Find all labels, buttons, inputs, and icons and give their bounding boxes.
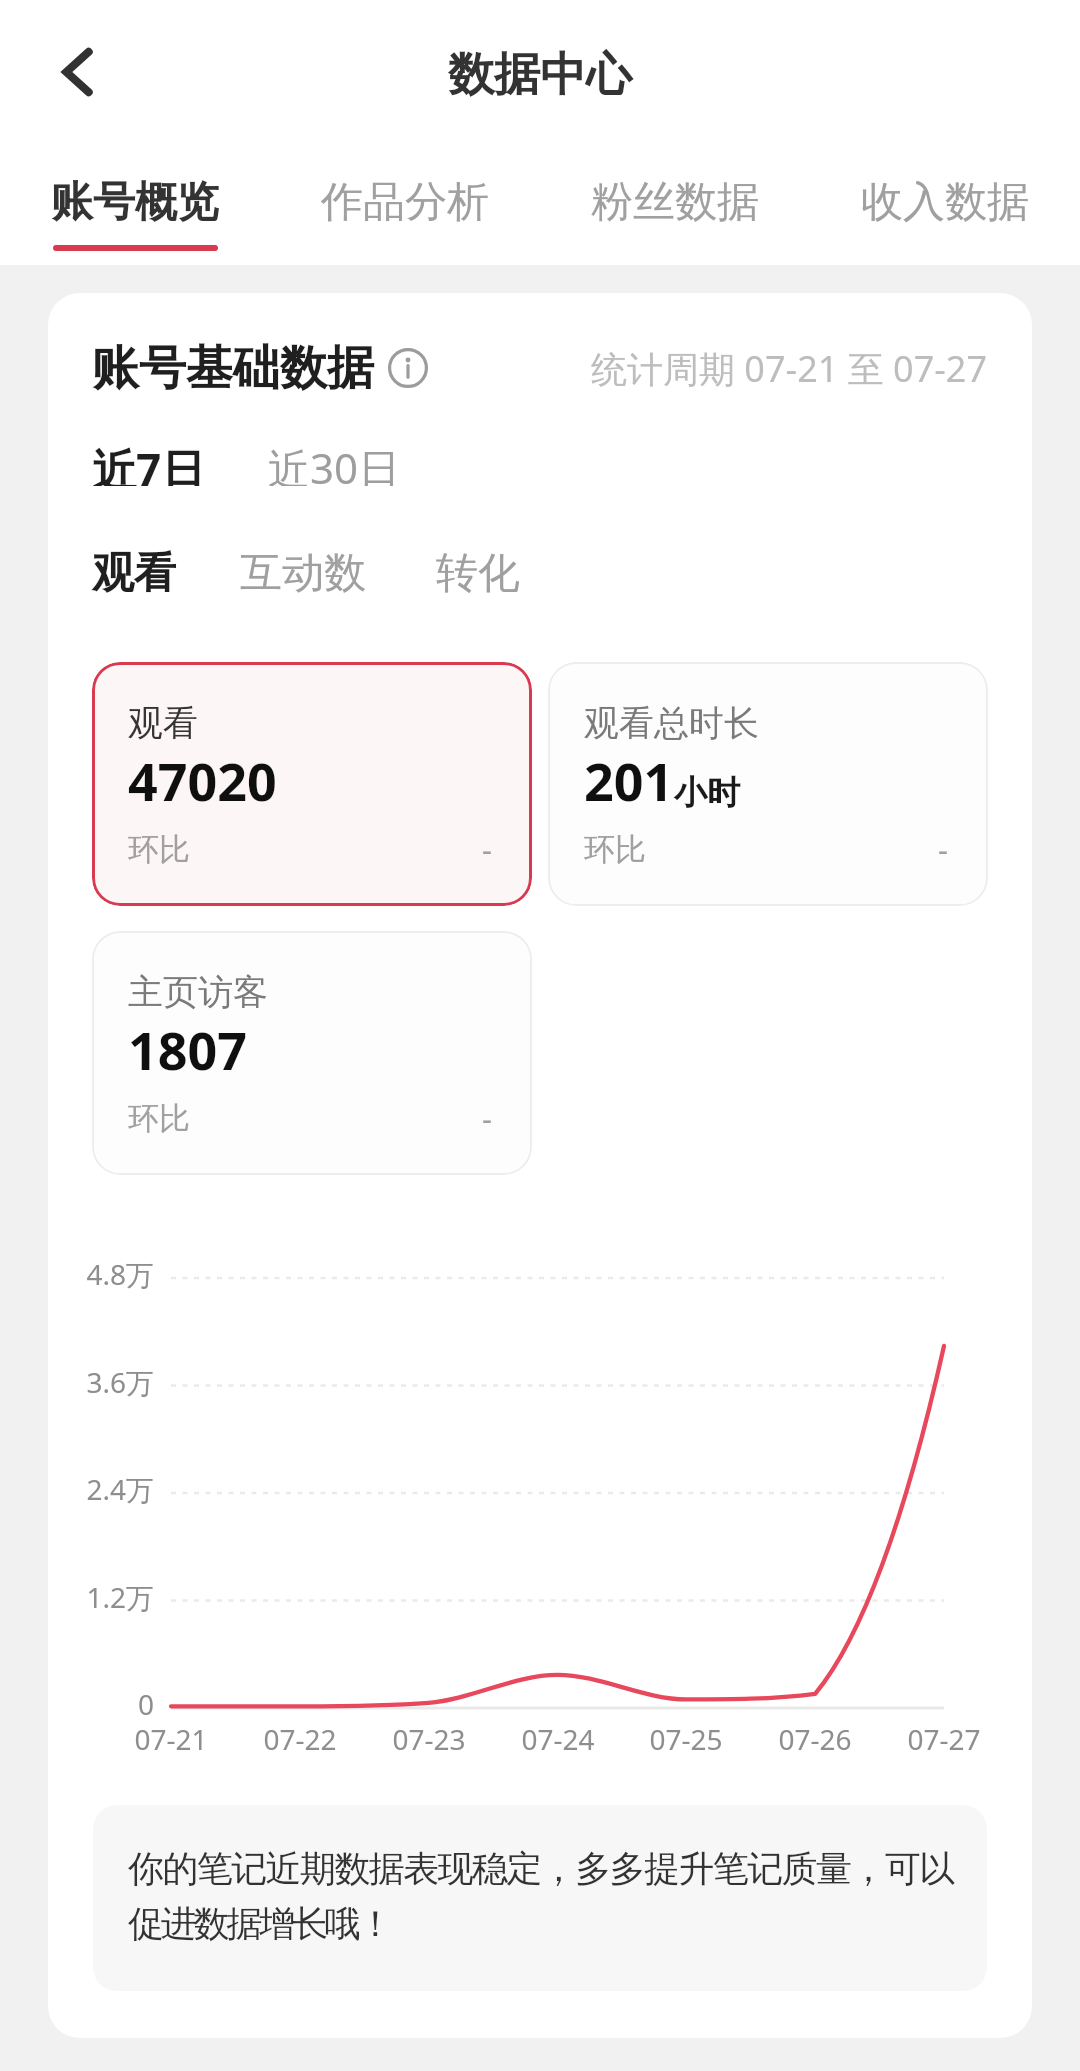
staticText: 07-26 (778, 1720, 852, 1758)
button[interactable]: 作品分析 (270, 144, 540, 265)
staticText: 小时 (674, 772, 740, 814)
staticText: 环比 (128, 830, 190, 869)
button[interactable]: 观看总时长 (548, 662, 988, 906)
staticText: 0 (137, 1685, 154, 1723)
staticText: 促进数据增长哦！ (128, 1901, 391, 1946)
staticText: 数据中心 (448, 46, 632, 104)
staticText: 你的笔记近期数据表现稳定，多多提升笔记质量，可以 (128, 1846, 954, 1891)
staticText: 收入数据 (861, 176, 1029, 229)
staticText: 观看 (128, 701, 198, 745)
staticText: 07-24 (521, 1720, 595, 1758)
staticText: 主页访客 (128, 970, 268, 1014)
button[interactable]: 转化 (420, 533, 536, 614)
staticText: - (482, 828, 492, 870)
staticText: 3.6万 (86, 1363, 154, 1401)
button[interactable]: 互动数 (224, 533, 382, 614)
staticText: 账号概览 (51, 176, 219, 229)
staticText: 1.2万 (86, 1578, 154, 1616)
button[interactable]: Info (388, 348, 428, 388)
staticText: 近7日 (92, 439, 206, 486)
staticText: 统计周期 07-21 至 07-27 (591, 344, 988, 393)
button[interactable]: 近30日 (252, 425, 417, 500)
staticText: 07-22 (263, 1720, 337, 1758)
staticText: - (482, 1097, 492, 1139)
staticText: 07-27 (907, 1720, 981, 1758)
staticText: - (938, 828, 948, 870)
staticText: 粉丝数据 (591, 176, 759, 229)
button[interactable]: 观看 (92, 662, 532, 906)
button[interactable]: 账号概览 (0, 144, 270, 265)
staticText: 47020 (128, 745, 277, 816)
staticText: 07-25 (649, 1720, 723, 1758)
button[interactable]: 近7日 (76, 425, 222, 500)
staticText: 07-23 (392, 1720, 466, 1758)
staticText: 近30日 (268, 439, 401, 486)
staticText: 07-21 (134, 1720, 208, 1758)
staticText: 1807 (128, 1014, 247, 1085)
staticText: 观看总时长 (584, 701, 759, 745)
staticText: 观看 (92, 547, 176, 600)
button[interactable]: 主页访客 (92, 931, 532, 1175)
button[interactable]: 粉丝数据 (540, 144, 810, 265)
staticText: 4.8万 (86, 1255, 154, 1293)
staticText: 2.4万 (86, 1470, 154, 1508)
staticText: 201 (584, 745, 674, 816)
staticText: 作品分析 (321, 176, 489, 229)
staticText: 转化 (436, 547, 520, 600)
staticText: 环比 (128, 1099, 190, 1138)
staticText: 环比 (584, 830, 646, 869)
button[interactable]: 收入数据 (810, 144, 1080, 265)
staticText: 互动数 (240, 547, 366, 600)
button[interactable]: Back (36, 26, 128, 118)
button[interactable]: 观看 (76, 533, 192, 614)
staticText: 账号基础数据 (92, 339, 374, 398)
